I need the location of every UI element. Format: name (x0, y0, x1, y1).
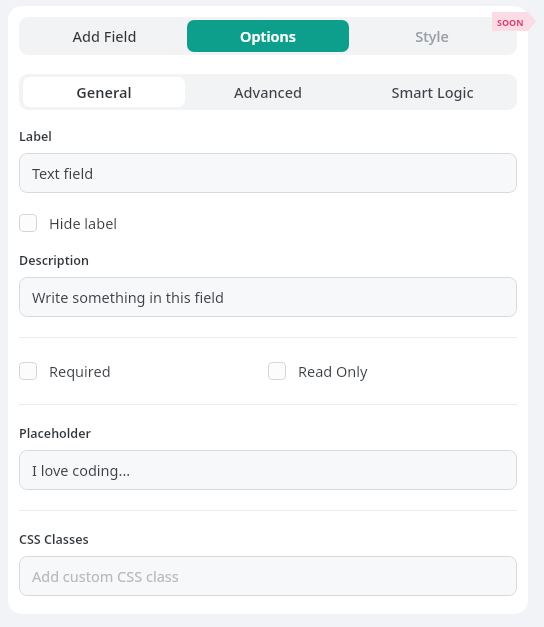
staticText: Description (19, 252, 89, 269)
button[interactable]: Options (187, 20, 349, 52)
button[interactable]: Add custom CSS class (19, 556, 517, 596)
button[interactable]: Write something in this field (19, 277, 517, 317)
staticText: Add Field (72, 26, 137, 46)
button[interactable]: Smart Logic (351, 77, 513, 107)
button[interactable]: Coming soon (492, 12, 536, 31)
staticText: Advanced (234, 82, 302, 102)
staticText: Write something in this field (32, 287, 224, 307)
staticText: Options (240, 26, 296, 46)
staticText: General (76, 82, 132, 102)
button[interactable]: Required (19, 359, 111, 383)
button[interactable]: Text field (19, 153, 517, 193)
staticText: Read Only (298, 361, 368, 381)
staticText: I love coding... (32, 460, 131, 480)
button[interactable]: Advanced (187, 77, 349, 107)
button[interactable]: I love coding... (19, 450, 517, 490)
button[interactable]: General (23, 77, 185, 107)
button[interactable]: Read Only (268, 359, 368, 383)
staticText: Text field (32, 163, 94, 183)
staticText: Smart Logic (391, 82, 474, 102)
button[interactable]: Hide label (19, 211, 118, 235)
button[interactable]: Add Field (23, 20, 185, 52)
staticText: Required (49, 361, 111, 381)
staticText: Add custom CSS class (32, 566, 179, 586)
staticText: SOON (497, 16, 524, 28)
staticText: Style (415, 26, 449, 46)
staticText: Label (19, 128, 52, 145)
staticText: CSS Classes (19, 531, 89, 548)
staticText: Placeholder (19, 425, 91, 442)
button[interactable]: Style (351, 20, 513, 52)
staticText: Hide label (49, 213, 118, 233)
